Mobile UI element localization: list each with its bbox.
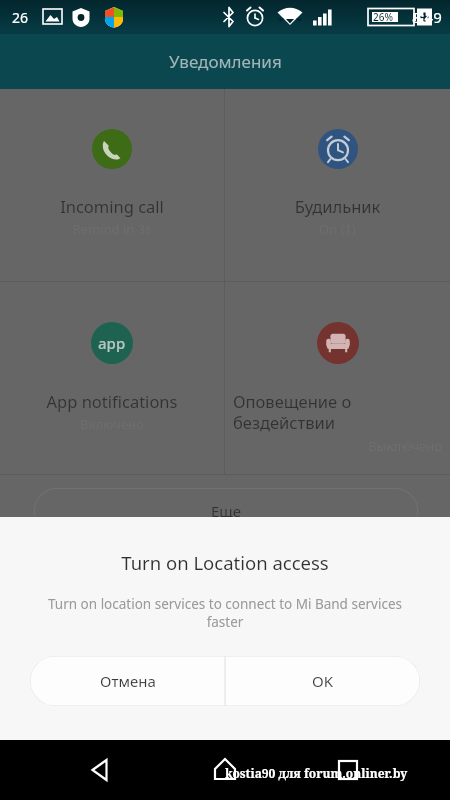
- button[interactable]: Home: [203, 748, 247, 792]
- staticText: Отмена: [100, 671, 156, 691]
- staticText: Оповещение о бездействии: [233, 390, 442, 434]
- button[interactable]: Idle alert: [225, 282, 450, 474]
- staticText: Уведомления: [169, 50, 282, 73]
- other: App notifications: [91, 322, 133, 364]
- staticText: 26%: [373, 10, 393, 24]
- button[interactable]: Back: [78, 748, 122, 792]
- staticText: Еще: [211, 501, 242, 521]
- staticText: Incoming call: [8, 195, 216, 217]
- staticText: kostia90 для forum.onliner.by: [225, 765, 408, 781]
- other: Idle alert: [317, 322, 359, 364]
- button[interactable]: OK: [225, 656, 420, 706]
- staticText: app: [98, 333, 126, 353]
- staticText: 26: [12, 8, 29, 27]
- other: Alarm: [318, 129, 358, 169]
- staticText: App notifications: [8, 390, 216, 412]
- button[interactable]: Отмена: [30, 656, 225, 706]
- staticText: OK: [312, 671, 334, 691]
- button[interactable]: App notifications: [0, 282, 224, 474]
- staticText: Turn on Location access: [0, 550, 450, 575]
- staticText: Turn on location services to connect to …: [44, 595, 406, 631]
- staticText: Будильник: [233, 195, 442, 217]
- button[interactable]: Еще: [34, 488, 418, 534]
- button[interactable]: Recent apps: [326, 748, 370, 792]
- staticText: 8:49: [412, 7, 442, 27]
- button[interactable]: Incoming call: [0, 89, 224, 281]
- button[interactable]: Alarm: [225, 89, 450, 281]
- other: Incoming call: [92, 129, 132, 169]
